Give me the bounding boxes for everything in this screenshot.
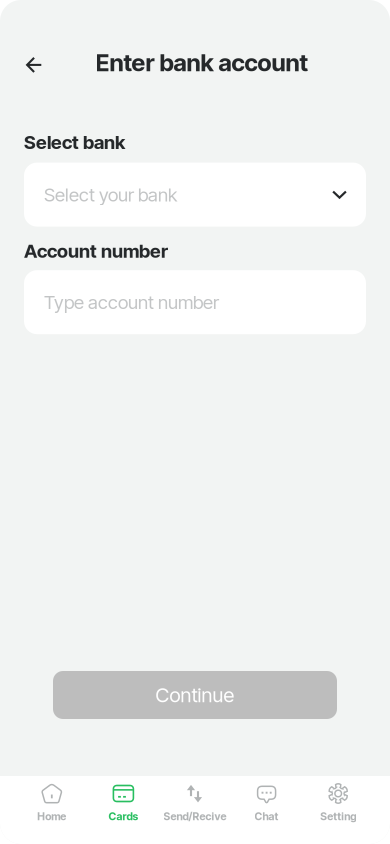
button[interactable]: Send/Recive [159,776,231,844]
staticText: Cards [108,810,138,823]
button[interactable]: Back [12,40,56,84]
button[interactable]: Setting [302,776,374,844]
staticText: Send/Recive [163,810,226,823]
button[interactable]: Select your bank [24,163,366,227]
button[interactable]: Home [16,776,88,844]
staticText: Enter bank account [95,48,308,77]
staticText: Setting [320,810,356,823]
button[interactable]: Cards [88,776,159,844]
staticText: Select bank [24,131,125,154]
staticText: Select your bank [44,183,177,206]
staticText: Continue [155,683,234,707]
button[interactable]: Continue [53,671,337,719]
staticText: Home [37,810,66,823]
staticText: Chat [255,810,279,823]
button[interactable]: Chat [231,776,302,844]
button[interactable]: Type account number [24,270,366,334]
staticText: Type account number [44,291,219,313]
staticText: Account number [24,240,168,262]
